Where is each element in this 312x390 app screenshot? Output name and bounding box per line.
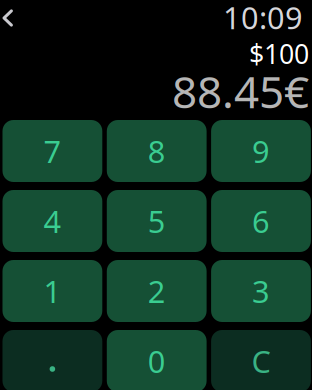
staticText: 5 [148,201,166,241]
button[interactable]: 6 [211,190,311,252]
button[interactable]: 8 [107,120,207,182]
staticText: 10:09 [223,0,303,38]
staticText: 0 [148,341,166,381]
staticText: 4 [43,201,61,241]
button[interactable]: 2 [107,260,207,322]
button[interactable]: 7 [2,120,102,182]
button[interactable]: Decimal point [2,330,102,390]
button[interactable]: 1 [2,260,102,322]
staticText: 2 [148,271,166,311]
staticText: $100 [249,36,309,71]
staticText: 88.45€ [172,62,309,120]
button[interactable]: 5 [107,190,207,252]
staticText: 9 [252,131,270,171]
staticText: 3 [252,271,270,311]
staticText: 7 [43,131,61,171]
button[interactable]: 4 [2,190,102,252]
button[interactable]: 0 [107,330,207,390]
staticText: 1 [43,271,61,311]
button[interactable]: 9 [211,120,311,182]
button[interactable]: Clear [211,330,311,390]
staticText: 8 [148,131,166,171]
button[interactable]: 3 [211,260,311,322]
staticText: C [251,341,270,381]
button[interactable]: Back [0,5,32,31]
staticText: 6 [252,201,270,241]
